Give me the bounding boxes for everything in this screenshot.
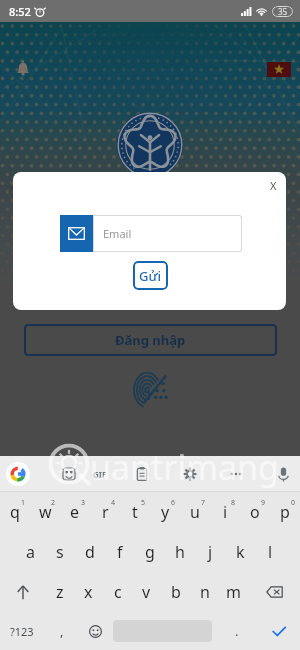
button[interactable]: Shift	[0, 572, 45, 612]
staticText: i	[223, 501, 228, 523]
staticText: q	[10, 501, 20, 523]
staticText: 7	[201, 498, 206, 508]
button[interactable]: Stickers	[58, 463, 80, 485]
button[interactable]: k	[225, 532, 255, 572]
staticText: 9	[261, 498, 266, 508]
button[interactable]: d	[75, 532, 105, 572]
staticText: p	[280, 501, 290, 523]
button[interactable]: r	[90, 492, 120, 532]
staticText: f	[117, 541, 123, 563]
button[interactable]: n	[190, 572, 219, 612]
staticText: Email	[103, 226, 132, 241]
staticText: e	[70, 501, 80, 523]
staticText: 5	[141, 498, 146, 508]
button[interactable]: Clipboard	[131, 463, 153, 485]
button[interactable]: Gửi	[133, 261, 168, 290]
staticText: g	[145, 541, 155, 563]
staticText: o	[250, 501, 260, 523]
staticText: X	[270, 178, 277, 193]
button[interactable]: Fingerprint login	[132, 375, 170, 409]
button[interactable]: .	[215, 612, 258, 650]
button[interactable]: w	[30, 492, 60, 532]
staticText: r	[102, 501, 109, 523]
button[interactable]: Language	[267, 62, 291, 77]
staticText: 6	[171, 498, 176, 508]
button[interactable]: Đăng nhập	[24, 324, 277, 356]
button[interactable]: Close	[262, 174, 284, 196]
button[interactable]: s	[45, 532, 75, 572]
staticText: z	[56, 581, 64, 603]
staticText: ,	[60, 622, 64, 640]
staticText: uantrimang	[90, 444, 279, 490]
button[interactable]: z	[45, 572, 74, 612]
staticText: GIF	[93, 469, 107, 480]
button[interactable]: Emoji	[80, 612, 110, 650]
staticText: c	[114, 581, 122, 603]
staticText: b	[171, 581, 181, 603]
staticText: Đăng nhập	[115, 331, 186, 349]
button[interactable]: ?123	[0, 612, 44, 650]
button[interactable]: o	[240, 492, 270, 532]
button[interactable]: l	[255, 532, 285, 572]
button[interactable]: e	[60, 492, 90, 532]
button[interactable]: c	[103, 572, 132, 612]
staticText: j	[208, 541, 213, 563]
staticText: x	[84, 581, 93, 603]
button[interactable]: a	[15, 532, 45, 572]
button[interactable]: More	[225, 463, 247, 485]
staticText: 3	[81, 498, 86, 508]
button[interactable]: i	[210, 492, 240, 532]
staticText: u	[190, 501, 200, 523]
button[interactable]: h	[165, 532, 195, 572]
button[interactable]: Settings	[179, 463, 201, 485]
button[interactable]: Enter	[258, 612, 300, 650]
button[interactable]: Backspace	[248, 572, 300, 612]
staticText: ?123	[10, 624, 34, 639]
staticText: Gửi	[139, 267, 162, 285]
button[interactable]: Notifications	[14, 59, 32, 79]
button[interactable]: Voice input	[271, 462, 295, 486]
button[interactable]: ,	[44, 612, 80, 650]
button[interactable]: p	[270, 492, 300, 532]
staticText: 8:52	[9, 4, 31, 19]
staticText: y	[161, 501, 170, 523]
staticText: .	[235, 622, 239, 640]
staticText: m	[226, 581, 241, 603]
staticText: 0	[291, 498, 296, 508]
staticText: 4	[111, 498, 116, 508]
staticText: v	[142, 581, 151, 603]
staticText: t	[132, 501, 138, 523]
staticText: 8	[231, 498, 236, 508]
button[interactable]: y	[150, 492, 180, 532]
staticText: a	[26, 541, 35, 563]
staticText: n	[200, 581, 210, 603]
button[interactable]: j	[195, 532, 225, 572]
staticText: 1	[21, 498, 26, 508]
button[interactable]: g	[135, 532, 165, 572]
button[interactable]: t	[120, 492, 150, 532]
button[interactable]: b	[161, 572, 190, 612]
button[interactable]: q	[0, 492, 30, 532]
button[interactable]: v	[132, 572, 161, 612]
button[interactable]: u	[180, 492, 210, 532]
button[interactable]: x	[74, 572, 103, 612]
button[interactable]: m	[219, 572, 248, 612]
staticText: h	[175, 541, 185, 563]
button[interactable]: Google	[6, 462, 30, 486]
button[interactable]: GIF	[90, 463, 110, 485]
staticText: s	[56, 541, 64, 563]
button[interactable]: f	[105, 532, 135, 572]
staticText: 35	[278, 6, 288, 17]
staticText: d	[85, 541, 95, 563]
staticText: w	[39, 501, 52, 523]
staticText: l	[268, 541, 273, 563]
staticText: 2	[51, 498, 56, 508]
staticText: k	[236, 541, 245, 563]
